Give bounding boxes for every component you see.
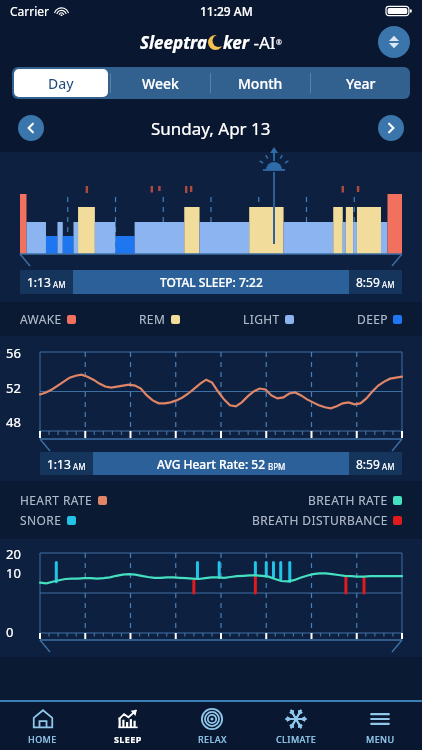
staticText: AWAKE: [20, 311, 62, 327]
staticText: 1:13: [47, 456, 71, 472]
staticText: RELAX: [198, 733, 227, 745]
staticText: BPM: [266, 461, 286, 472]
staticText: HEART RATE: [20, 492, 93, 508]
staticText: Carrier: [10, 3, 50, 19]
staticText: ker: [223, 31, 249, 54]
staticText: Sunday, Apr 13: [151, 117, 271, 140]
staticText: 48: [6, 413, 21, 431]
staticText: BREATH DISTURBANCE: [252, 512, 388, 528]
button[interactable]: Week: [111, 67, 210, 99]
staticText: CLIMATE: [276, 733, 317, 745]
staticText: SLEEP: [114, 733, 142, 745]
staticText: 52: [6, 379, 21, 397]
staticText: ®: [276, 38, 282, 48]
staticText: AM: [380, 279, 395, 290]
staticText: 11:29 AM: [200, 3, 253, 19]
button[interactable]: Year: [311, 67, 410, 99]
button[interactable]: RELAX: [170, 702, 254, 750]
staticText: AM: [71, 461, 86, 472]
button[interactable]: Previous day: [18, 115, 44, 141]
staticText: 1:13: [27, 274, 51, 290]
button[interactable]: MENU: [338, 702, 422, 750]
staticText: 8:59: [356, 456, 380, 472]
staticText: Sleeptra: [140, 31, 208, 54]
staticText: MENU: [366, 733, 395, 745]
staticText: -AI: [249, 31, 276, 54]
button[interactable]: Next day: [378, 115, 404, 141]
staticText: AM: [380, 461, 395, 472]
staticText: TOTAL SLEEP: 7:22: [160, 274, 263, 290]
staticText: 10: [6, 564, 21, 582]
staticText: 20: [6, 545, 21, 563]
staticText: 8:59: [356, 274, 380, 290]
staticText: SNORE: [20, 512, 62, 528]
button[interactable]: Day: [14, 69, 108, 97]
staticText: AM: [51, 279, 66, 290]
staticText: Month: [238, 74, 283, 93]
staticText: 56: [6, 344, 21, 362]
staticText: HOME: [28, 733, 57, 745]
button[interactable]: Adjust: [378, 26, 410, 58]
staticText: REM: [139, 311, 166, 327]
button[interactable]: Month: [211, 67, 310, 99]
staticText: Week: [142, 74, 179, 93]
staticText: BREATH RATE: [308, 492, 388, 508]
staticText: Year: [346, 74, 376, 93]
staticText: DEEP: [357, 311, 388, 327]
staticText: LIGHT: [243, 311, 280, 327]
staticText: AVG Heart Rate: 52: [157, 456, 266, 472]
button[interactable]: HOME: [0, 702, 85, 750]
staticText: 0: [6, 623, 14, 641]
button[interactable]: SLEEP: [85, 702, 170, 750]
button[interactable]: CLIMATE: [254, 702, 338, 750]
staticText: Day: [48, 74, 74, 93]
